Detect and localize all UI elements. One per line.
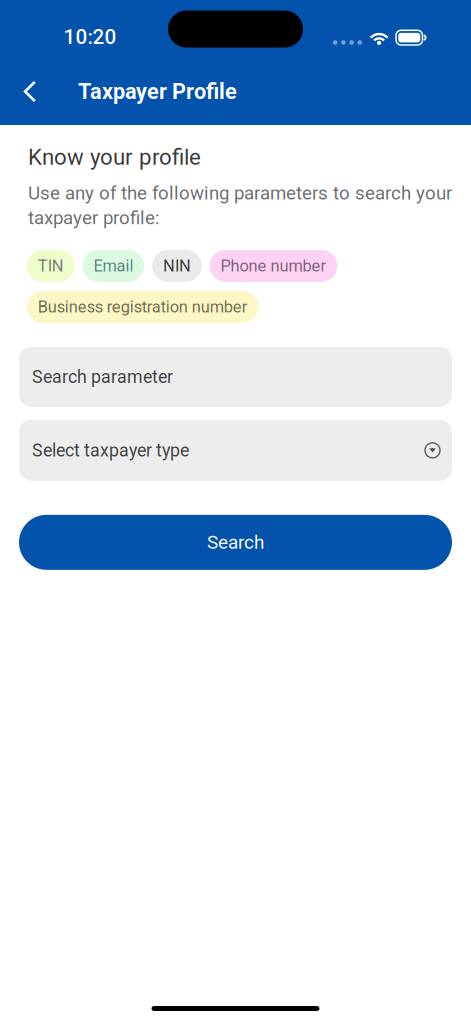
staticText: Search parameter	[32, 366, 173, 387]
staticText: Search	[207, 531, 264, 553]
button[interactable]: NIN	[152, 250, 202, 282]
staticText: Business registration number	[38, 297, 248, 316]
button[interactable]: Search parameter	[19, 347, 452, 407]
staticText: Select taxpayer type	[32, 440, 189, 461]
button[interactable]: Select taxpayer type	[19, 420, 452, 481]
button[interactable]: Back	[4, 65, 56, 117]
button[interactable]: Business registration number	[27, 291, 259, 323]
staticText: Taxpayer Profile	[78, 79, 237, 104]
staticText: Email	[93, 256, 133, 275]
staticText: Know your profile	[28, 144, 201, 170]
staticText: NIN	[163, 256, 191, 275]
staticText: TIN	[38, 256, 64, 275]
button[interactable]: Phone number	[210, 250, 337, 282]
button[interactable]: Search	[19, 515, 452, 570]
staticText: Use any of the following parameters to s…	[28, 182, 452, 229]
button[interactable]: Email	[83, 250, 144, 282]
button[interactable]: TIN	[27, 250, 75, 282]
staticText: Phone number	[221, 256, 327, 275]
staticText: 10:20	[63, 25, 116, 49]
